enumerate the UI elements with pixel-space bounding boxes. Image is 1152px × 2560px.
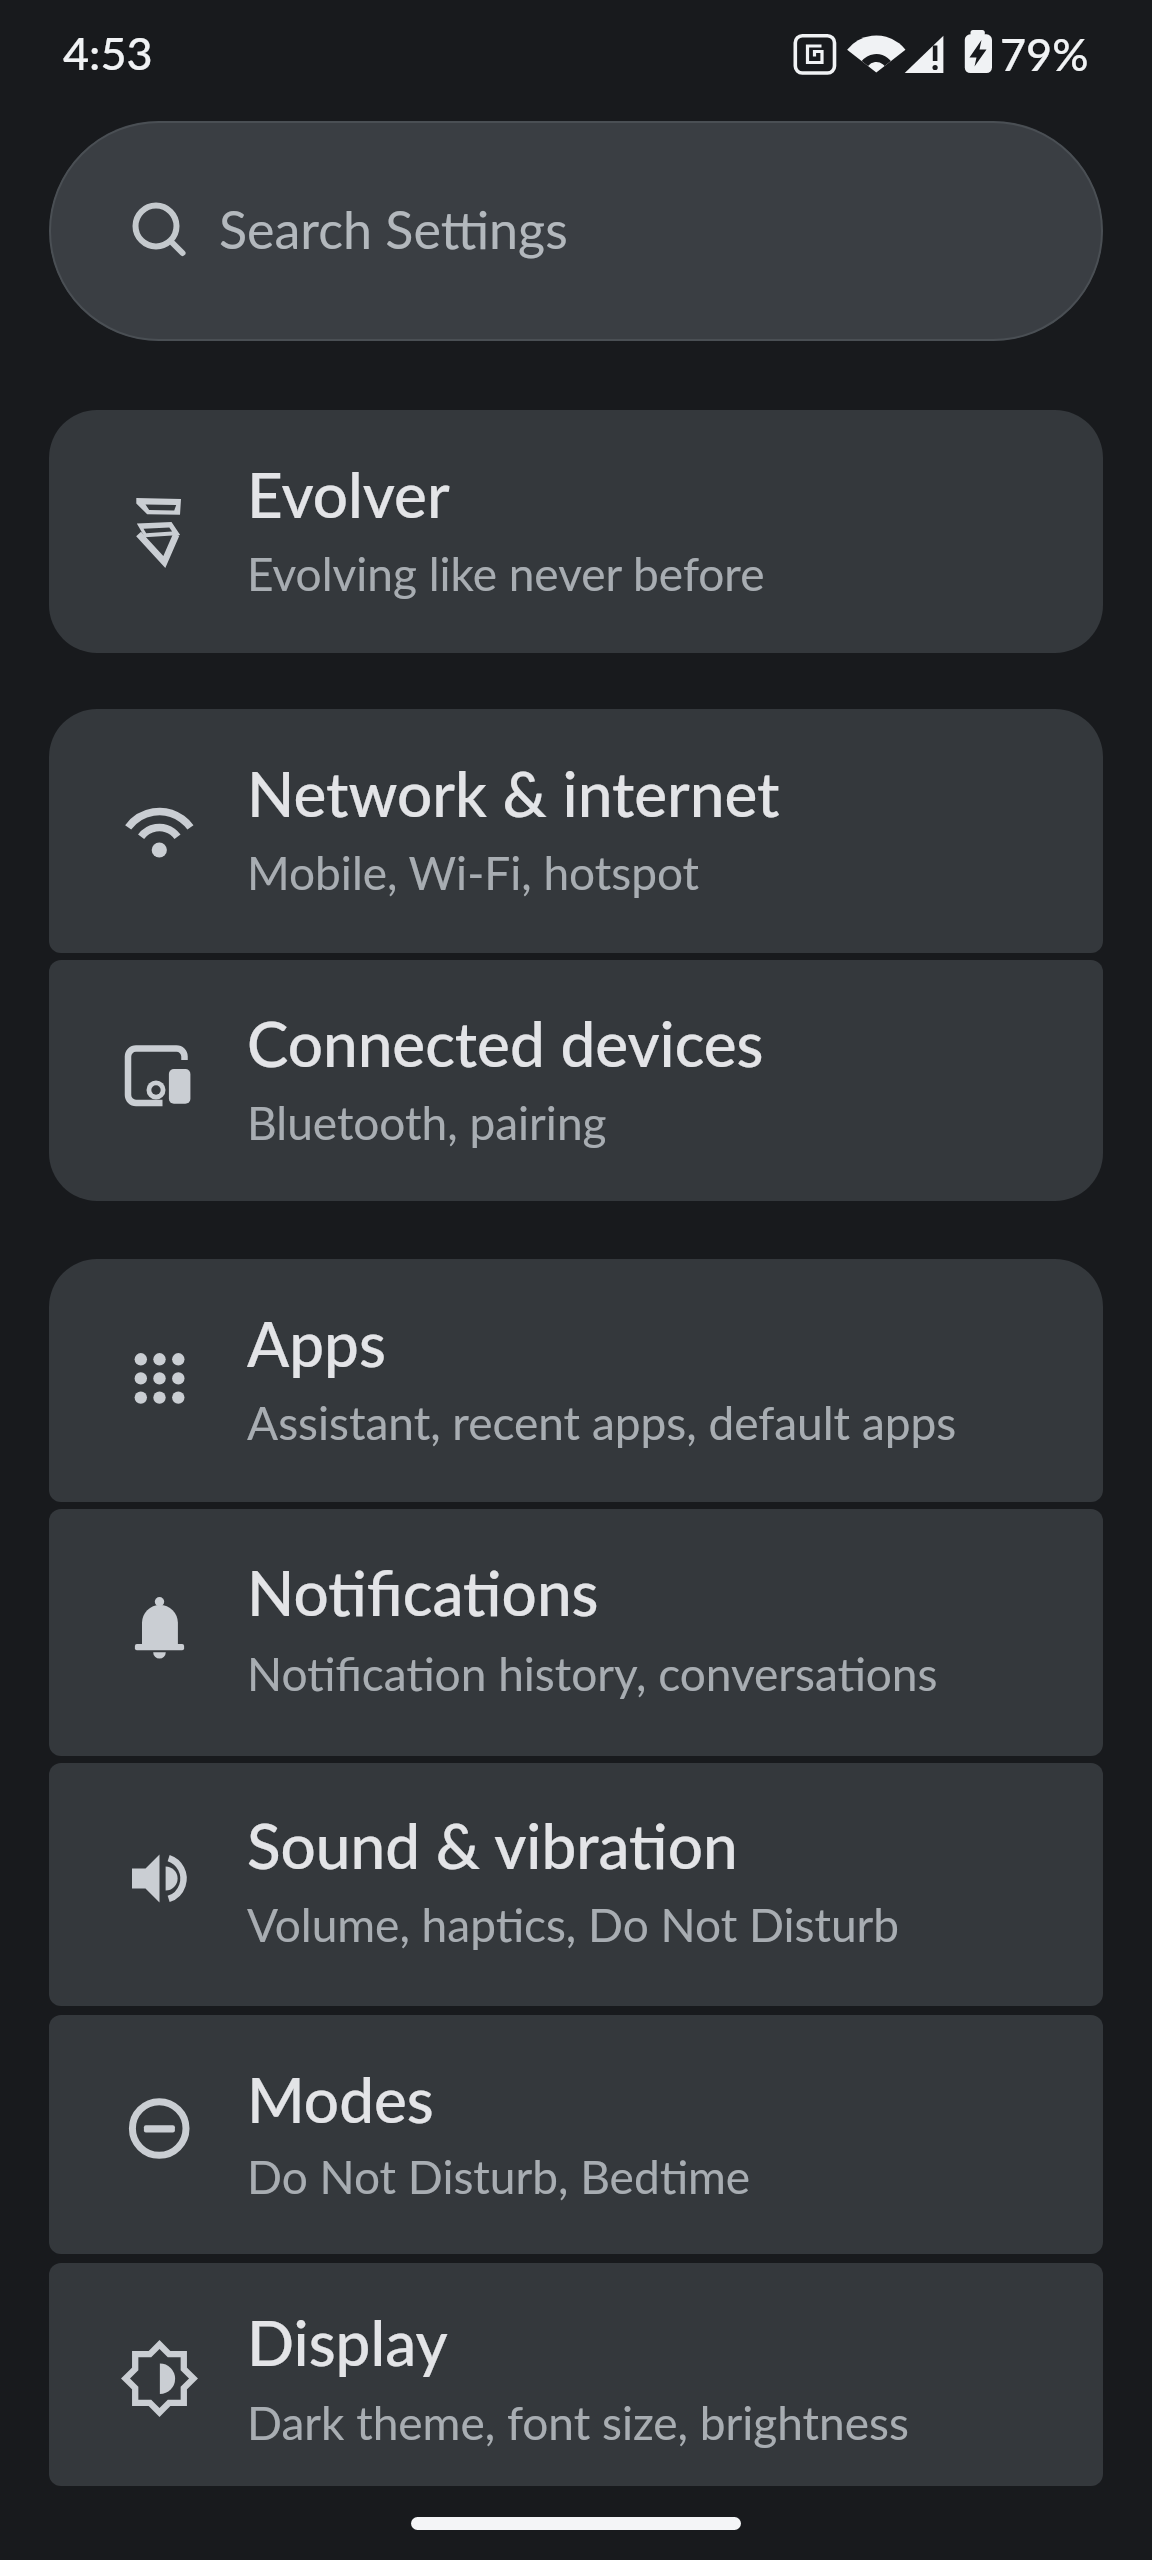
staticText: Display: [247, 2305, 448, 2379]
staticText: Apps: [247, 1306, 386, 1380]
staticText: 79%: [1000, 27, 1089, 81]
button[interactable]: Search Settings: [49, 121, 1103, 341]
button[interactable]: Notifications: [49, 1509, 1103, 1756]
staticText: Notification history, conversations: [247, 1646, 938, 1701]
staticText: Evolver: [247, 457, 450, 531]
staticText: 4:53: [63, 26, 153, 80]
staticText: Volume, haptics, Do Not Disturb: [247, 1897, 900, 1952]
staticText: Sound & vibration: [247, 1808, 738, 1882]
staticText: Connected devices: [247, 1006, 764, 1080]
staticText: Search Settings: [219, 198, 568, 260]
button[interactable]: Network & internet: [49, 709, 1103, 953]
staticText: Assistant, recent apps, default apps: [247, 1395, 957, 1450]
button[interactable]: Evolver: [49, 410, 1103, 653]
staticText: Evolving like never before: [247, 546, 765, 601]
staticText: Notifications: [247, 1555, 599, 1629]
button[interactable]: Display: [49, 2263, 1103, 2486]
staticText: Bluetooth, pairing: [247, 1095, 607, 1150]
staticText: Dark theme, font size, brightness: [247, 2395, 909, 2450]
staticText: Do Not Disturb, Bedtime: [247, 2149, 751, 2204]
button[interactable]: Sound & vibration: [49, 1763, 1103, 2006]
button[interactable]: Apps: [49, 1259, 1103, 1502]
button[interactable]: Modes: [49, 2015, 1103, 2254]
staticText: Modes: [247, 2062, 434, 2136]
staticText: Mobile, Wi-Fi, hotspot: [247, 845, 700, 900]
staticText: Network & internet: [247, 756, 780, 830]
button[interactable]: Connected devices: [49, 960, 1103, 1201]
